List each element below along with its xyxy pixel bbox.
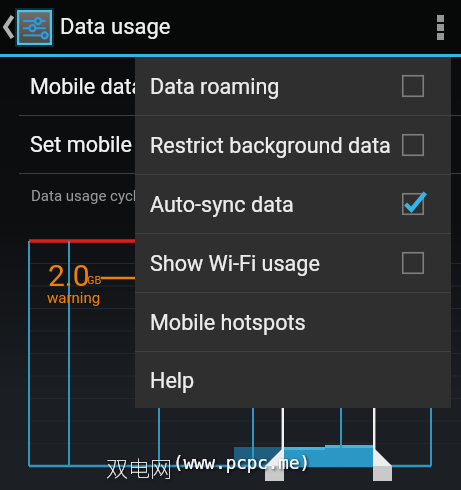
button[interactable]: Data roaming: [135, 57, 451, 115]
button[interactable]: Restrict background data: [135, 116, 451, 174]
staticText: Data usage cycle: [31, 187, 145, 205]
button[interactable]: Auto-sync data: [135, 175, 451, 233]
staticText: Data usage: [60, 14, 171, 40]
button[interactable]: Navigate up: [0, 0, 52, 54]
button[interactable]: Mobile hotspots: [135, 293, 451, 351]
button[interactable]: Set mobile: [0, 116, 461, 173]
button[interactable]: Mobile data: [0, 57, 461, 115]
staticText: 双电网: [106, 451, 173, 483]
staticText: Show Wi-Fi usage: [150, 251, 320, 276]
button[interactable]: Show Wi-Fi usage: [135, 234, 451, 292]
staticText: Mobile data: [30, 74, 144, 99]
staticText: Restrict background data: [150, 133, 391, 158]
staticText: 2.0: [48, 258, 90, 293]
staticText: warning: [47, 289, 101, 307]
staticText: Set mobile: [30, 132, 133, 157]
button[interactable]: More options: [419, 0, 461, 54]
staticText: Data roaming: [150, 74, 280, 99]
staticText: GB: [87, 274, 102, 287]
staticText: (www.pcpc.me): [173, 453, 310, 473]
staticText: Help: [150, 368, 195, 393]
staticText: Mobile hotspots: [150, 310, 306, 335]
staticText: Auto-sync data: [150, 192, 294, 217]
button[interactable]: Help: [135, 352, 451, 408]
